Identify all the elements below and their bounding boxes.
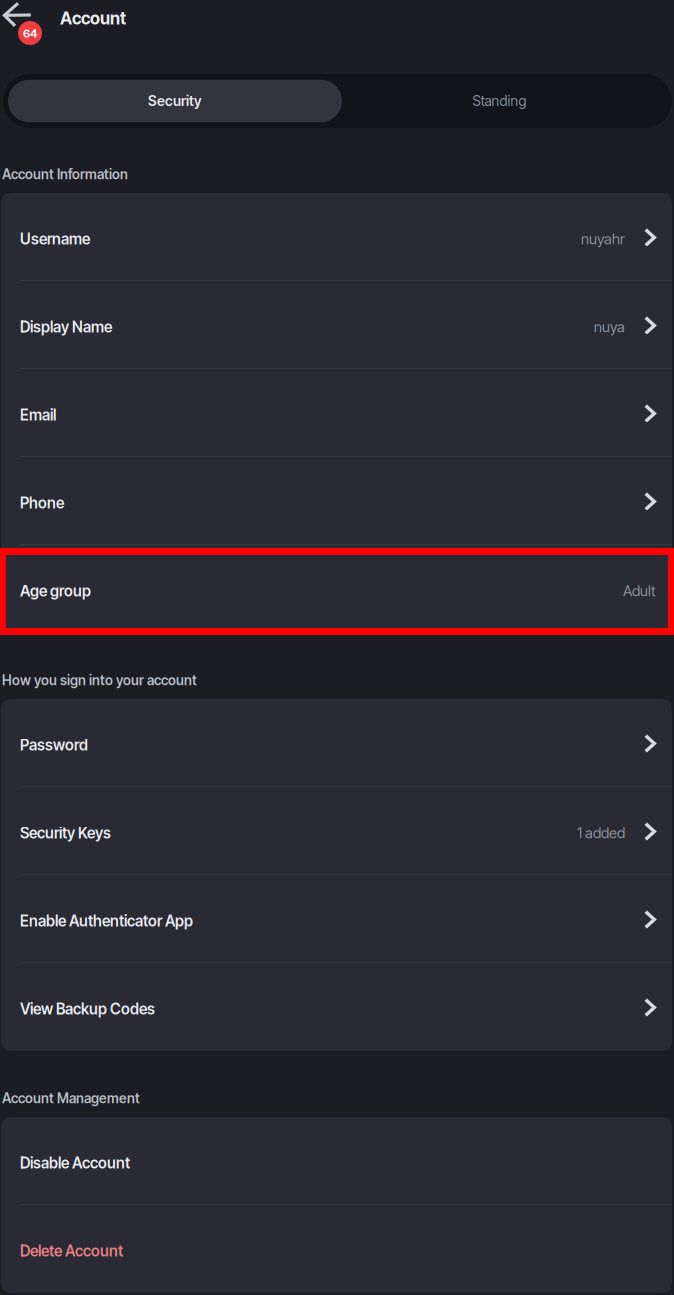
staticText: Enable Authenticator App [20, 912, 193, 930]
button[interactable]: Security [8, 80, 342, 122]
staticText: Username [20, 230, 90, 248]
button[interactable]: Security Keys [1, 787, 672, 875]
staticText: View Backup Codes [20, 1000, 155, 1018]
staticText: 1 added [577, 824, 625, 842]
button[interactable]: Enable Authenticator App [1, 875, 672, 963]
staticText: Phone [20, 494, 64, 512]
staticText: Disable Account [20, 1154, 130, 1172]
staticText: Display Name [20, 318, 112, 336]
button[interactable]: Email [1, 369, 672, 457]
button[interactable]: Disable Account [1, 1117, 672, 1205]
button[interactable]: View Backup Codes [1, 963, 672, 1051]
button[interactable]: Back [0, 0, 50, 48]
button[interactable]: Age group [1, 545, 672, 633]
staticText: Standing [472, 92, 526, 109]
staticText: nuya [594, 318, 625, 336]
staticText: Email [20, 406, 56, 424]
staticText: Adult [623, 582, 656, 600]
staticText: Account Information [2, 166, 128, 182]
staticText: Account [60, 8, 126, 29]
staticText: Account Management [2, 1090, 140, 1106]
button[interactable]: Delete Account [1, 1205, 672, 1293]
staticText: How you sign into your account [2, 672, 197, 688]
staticText: Password [20, 736, 88, 754]
button[interactable]: Username [1, 193, 672, 281]
button[interactable]: Phone [1, 457, 672, 545]
staticText: 64 [23, 27, 37, 40]
staticText: Age group [20, 582, 91, 600]
staticText: Delete Account [20, 1242, 123, 1260]
button[interactable]: Password [1, 699, 672, 787]
button[interactable]: Standing [342, 80, 667, 122]
staticText: Security [148, 92, 202, 109]
button[interactable]: Display Name [1, 281, 672, 369]
staticText: nuyahr [581, 230, 625, 248]
staticText: Security Keys [20, 824, 111, 842]
